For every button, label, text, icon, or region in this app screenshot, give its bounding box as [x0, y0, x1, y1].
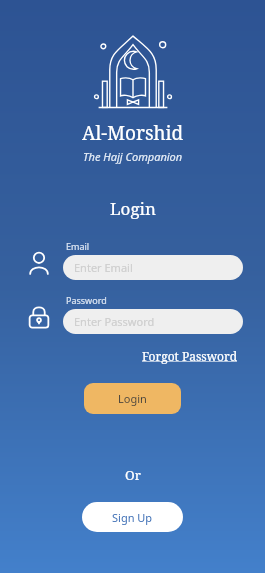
button[interactable]: Enter Password	[63, 309, 243, 334]
button[interactable]: Sign Up	[82, 502, 183, 532]
staticText: Or	[125, 466, 141, 484]
staticText: Enter Email	[74, 260, 133, 275]
staticText: Login	[110, 197, 156, 220]
staticText: Password	[66, 294, 107, 306]
staticText: The Hajj Companion	[83, 149, 183, 164]
staticText: Login	[118, 391, 147, 406]
staticText: Al-Morshid	[82, 120, 184, 146]
button[interactable]: Enter Email	[63, 255, 243, 280]
staticText: Email	[66, 240, 90, 252]
button[interactable]: Forgot Password	[142, 346, 265, 366]
staticText: Enter Password	[74, 314, 155, 329]
other: Email	[22, 246, 56, 280]
staticText: Sign Up	[112, 510, 153, 525]
staticText: Forgot Password	[142, 348, 238, 364]
other: Password	[22, 300, 56, 334]
button[interactable]: Login	[84, 383, 181, 414]
